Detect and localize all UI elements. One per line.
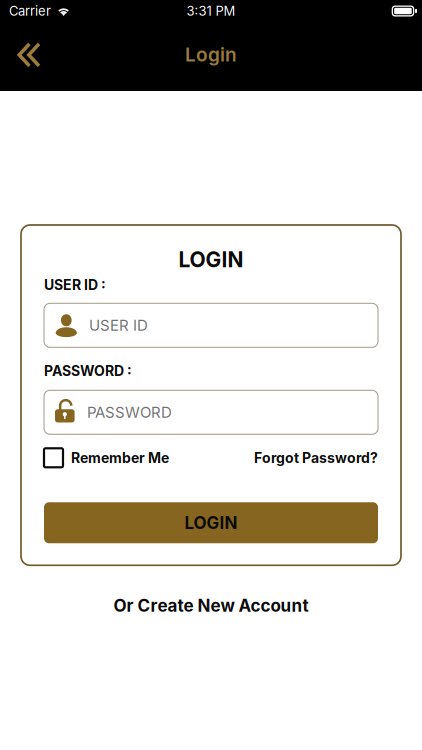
staticText: Carrier	[9, 3, 51, 19]
staticText: LOGIN	[178, 247, 243, 272]
button[interactable]: Forgot Password?	[254, 448, 378, 467]
staticText: PASSWORD	[87, 403, 172, 421]
button[interactable]: LOGIN	[44, 502, 378, 543]
staticText: Forgot Password?	[254, 449, 378, 466]
button[interactable]: Or Create New Account	[83, 565, 338, 630]
button[interactable]: Back	[0, 36, 55, 77]
staticText: PASSWORD :	[44, 362, 132, 379]
staticText: Remember Me	[71, 449, 169, 466]
staticText: USER ID	[89, 316, 148, 334]
staticText: LOGIN	[184, 512, 237, 533]
staticText: Or Create New Account	[113, 595, 308, 616]
staticText: USER ID :	[44, 276, 106, 293]
button[interactable]: Remember Me	[44, 448, 169, 467]
staticText: 3:31 PM	[186, 3, 235, 19]
staticText: Login	[185, 43, 237, 66]
